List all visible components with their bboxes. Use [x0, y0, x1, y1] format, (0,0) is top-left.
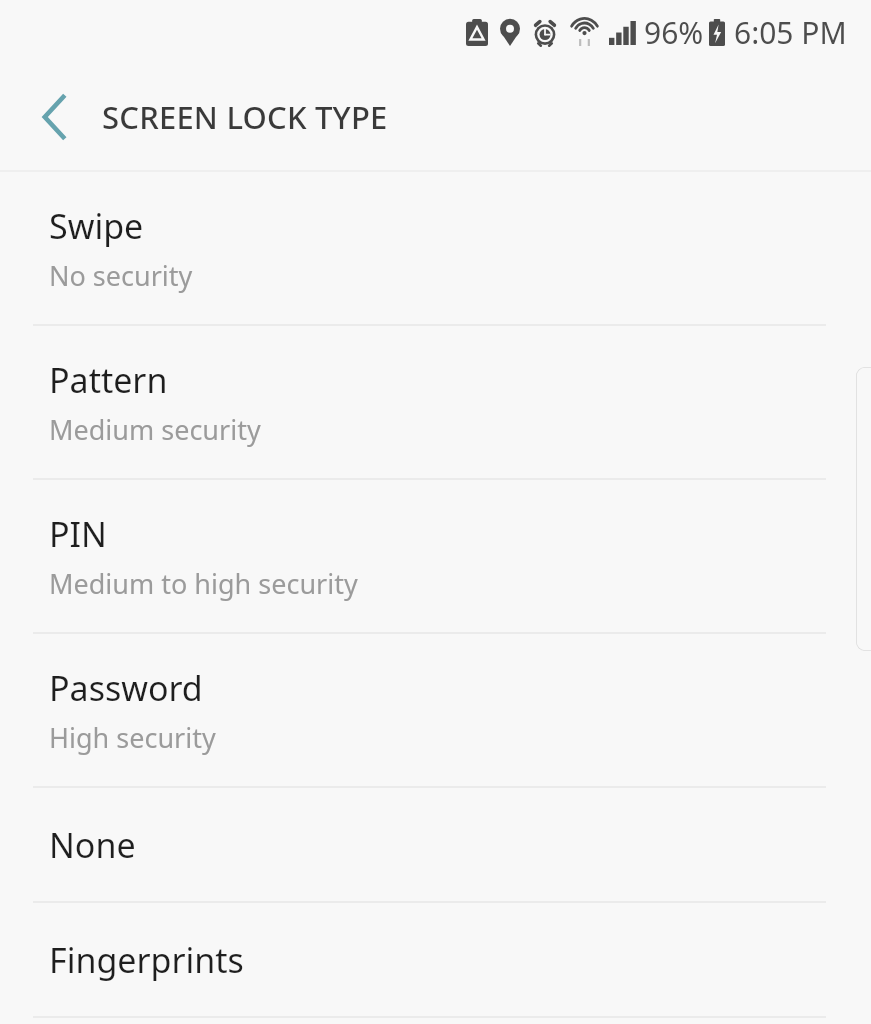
staticText: Fingerprints — [49, 937, 244, 983]
button[interactable]: None — [0, 788, 871, 901]
button[interactable]: Back — [20, 83, 88, 151]
staticText: SCREEN LOCK TYPE — [102, 96, 388, 138]
staticText: PIN — [49, 511, 107, 557]
staticText: 96% — [644, 12, 704, 53]
staticText: Medium security — [49, 411, 261, 448]
button[interactable]: PIN — [0, 480, 871, 632]
button[interactable]: Fingerprints — [0, 903, 871, 1016]
button[interactable]: Pattern — [0, 326, 871, 478]
staticText: None — [49, 822, 136, 868]
button[interactable]: Swipe — [0, 172, 871, 324]
staticText: Medium to high security — [49, 565, 358, 602]
staticText: 6:05 PM — [734, 12, 847, 53]
staticText: Pattern — [49, 357, 168, 403]
staticText: No security — [49, 257, 193, 294]
staticText: High security — [49, 719, 216, 756]
staticText: Swipe — [49, 203, 144, 249]
button[interactable]: Password — [0, 634, 871, 786]
staticText: Password — [49, 665, 203, 711]
